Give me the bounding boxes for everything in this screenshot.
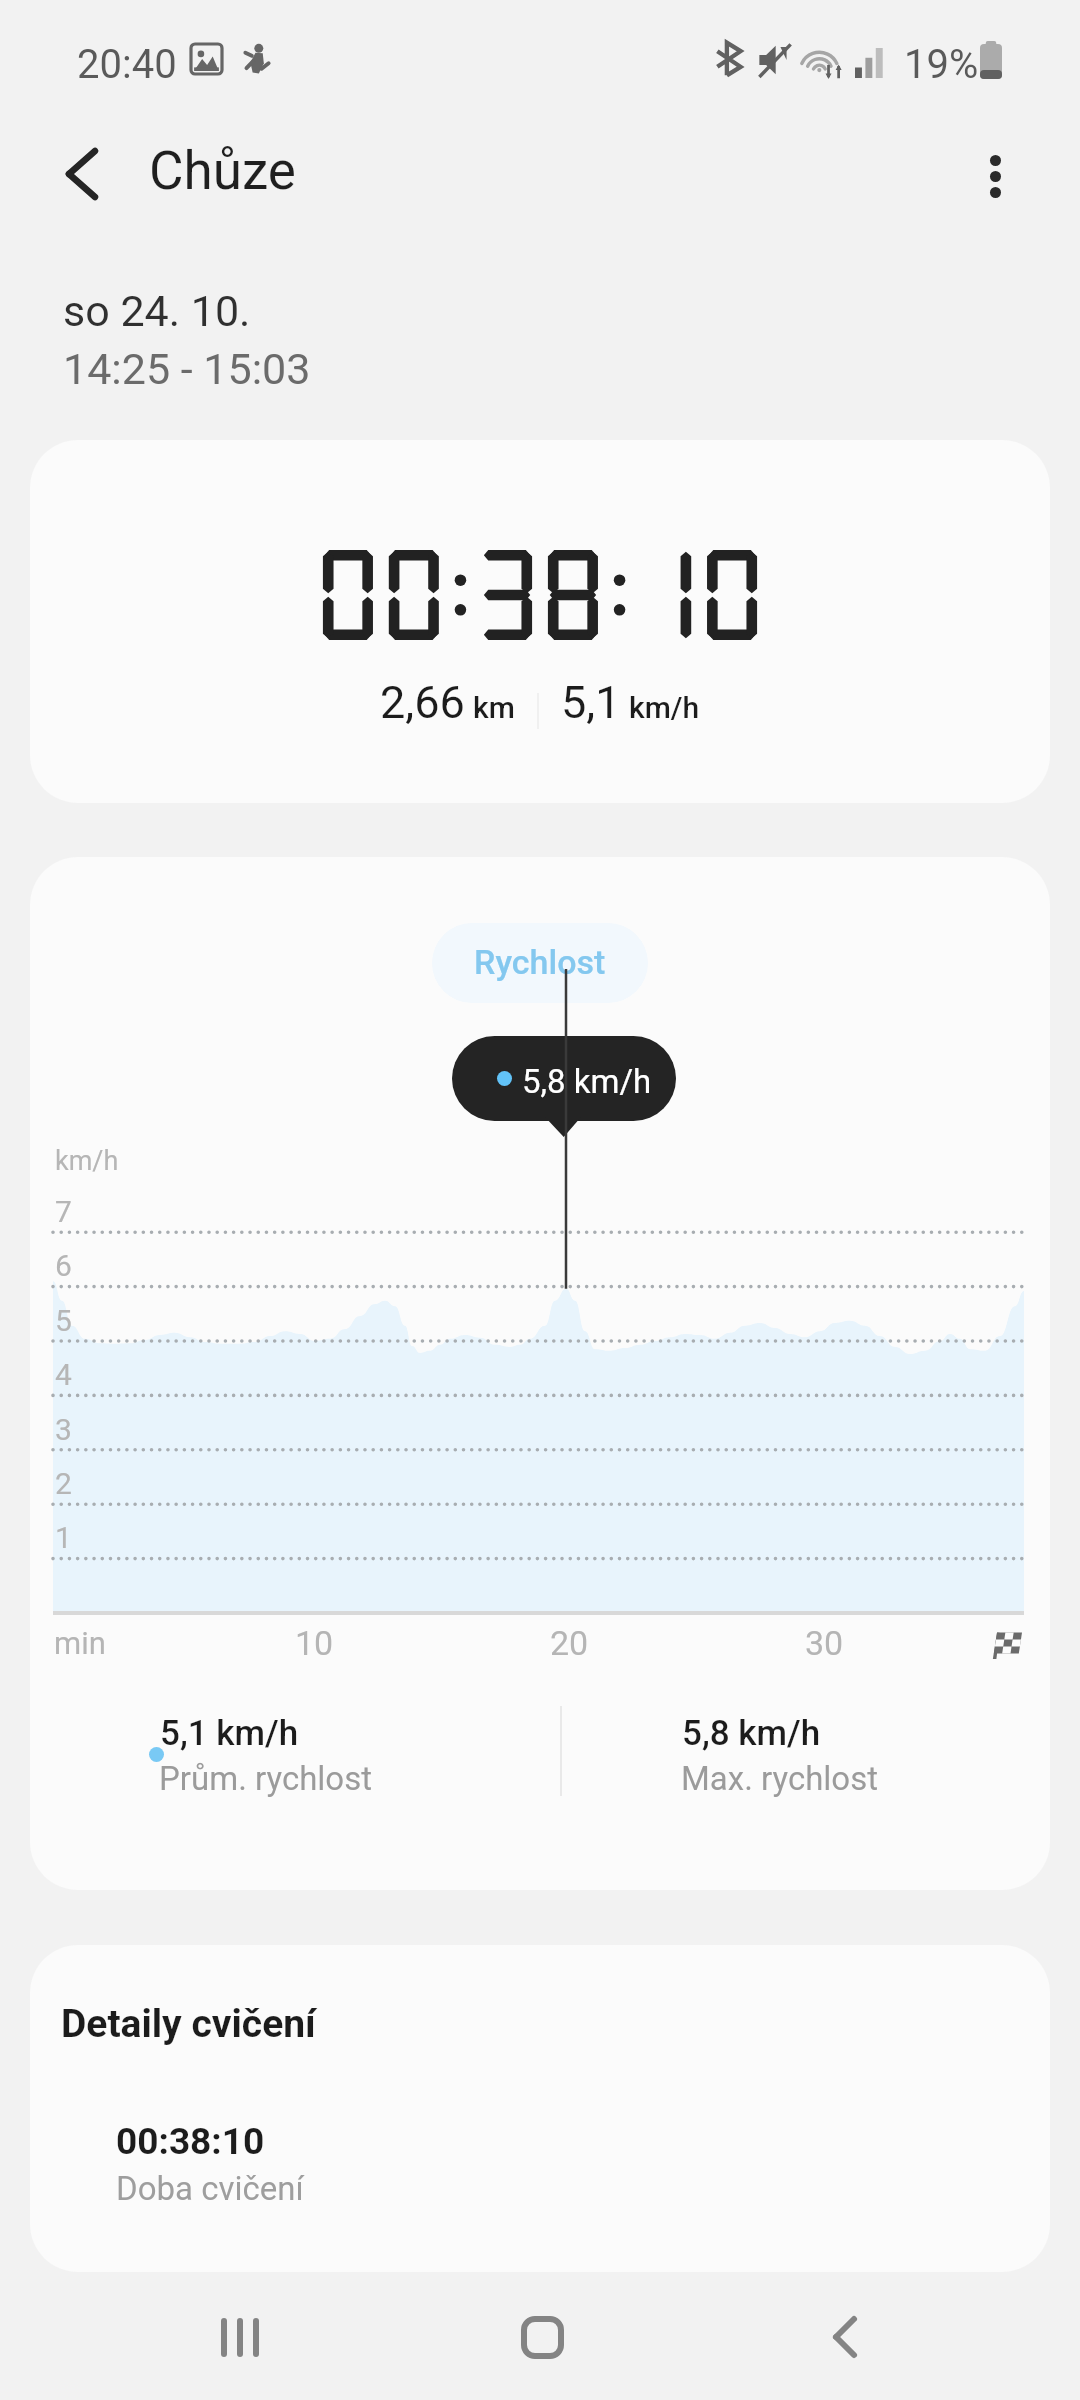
staticText: km [473,690,515,725]
staticText: 3 [55,1412,72,1447]
button[interactable]: More options [949,130,1041,222]
staticText: Chůze [149,140,296,202]
button[interactable]: 5,1 km/h [119,1702,559,1812]
staticText: Max. rychlost [681,1759,879,1798]
staticText: Prům. rychlost [159,1759,373,1798]
other: Finish [990,1631,1022,1659]
staticText: 7 [55,1194,72,1229]
staticText: 00:38:10 [116,2120,265,2163]
button[interactable]: 2,66 [30,440,1050,803]
staticText: km/h [55,1145,119,1177]
staticText: Detaily cvičení [61,2001,316,2047]
button[interactable]: Home [482,2277,602,2397]
button[interactable]: Back [36,128,128,220]
staticText: 5,1 km/h [160,1713,299,1754]
staticText: so 24. 10. [63,286,251,336]
staticText: 10 [295,1623,334,1663]
staticText: km/h [629,690,700,725]
staticText: 19% [904,41,979,88]
staticText: Doba cvičení [116,2169,304,2208]
staticText: 2,66 [380,676,465,729]
button[interactable]: Recent apps [180,2277,300,2397]
staticText: 5,1 [561,676,621,729]
staticText: 1 [55,1520,72,1555]
staticText: 6 [55,1248,72,1283]
staticText: 20 [550,1623,589,1663]
staticText: 14:25 - 15:03 [63,344,311,394]
staticText: 4 [55,1357,72,1392]
button[interactable]: 5,8 km/h [643,1702,1043,1812]
staticText: 20:40 [77,41,177,88]
staticText: 2 [55,1466,72,1501]
staticText: 5,8 km/h [682,1713,821,1754]
staticText: min [54,1625,106,1661]
staticText: Rychlost [474,942,606,982]
staticText: 5,8 km/h [522,1062,652,1101]
staticText: 5 [55,1303,72,1338]
button[interactable]: 5,8 km/h [452,1036,676,1121]
button[interactable]: Rychlost [432,923,648,1003]
button[interactable]: Back [785,2277,905,2397]
staticText: 30 [805,1623,844,1663]
